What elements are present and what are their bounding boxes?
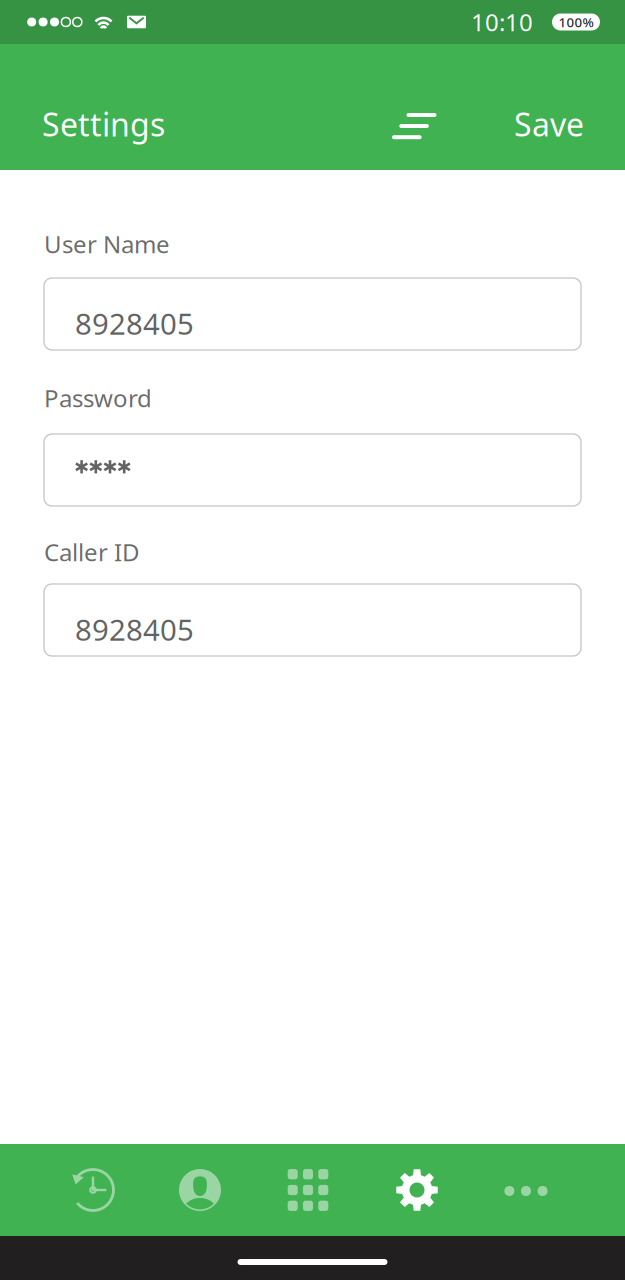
button[interactable]: Recents: [41, 1144, 145, 1236]
button[interactable]: Password: [44, 434, 581, 506]
staticText: 8928405: [75, 304, 194, 343]
staticText: 8928405: [75, 610, 194, 649]
button[interactable]: Keypad: [256, 1144, 360, 1236]
staticText: Password: [44, 382, 152, 414]
staticText: Save: [514, 103, 584, 145]
staticText: User Name: [44, 228, 170, 260]
staticText: 100%: [558, 13, 593, 31]
staticText: Caller ID: [44, 536, 140, 568]
button[interactable]: More: [474, 1145, 578, 1237]
staticText: 10:10: [471, 6, 533, 38]
button[interactable]: Contacts: [148, 1144, 252, 1236]
button[interactable]: Settings: [365, 1144, 469, 1236]
button[interactable]: User Name: [44, 278, 581, 350]
button[interactable]: Sort: [378, 101, 451, 151]
button[interactable]: Caller ID: [44, 584, 581, 656]
staticText: Settings: [42, 103, 165, 145]
button[interactable]: Save: [492, 101, 592, 147]
